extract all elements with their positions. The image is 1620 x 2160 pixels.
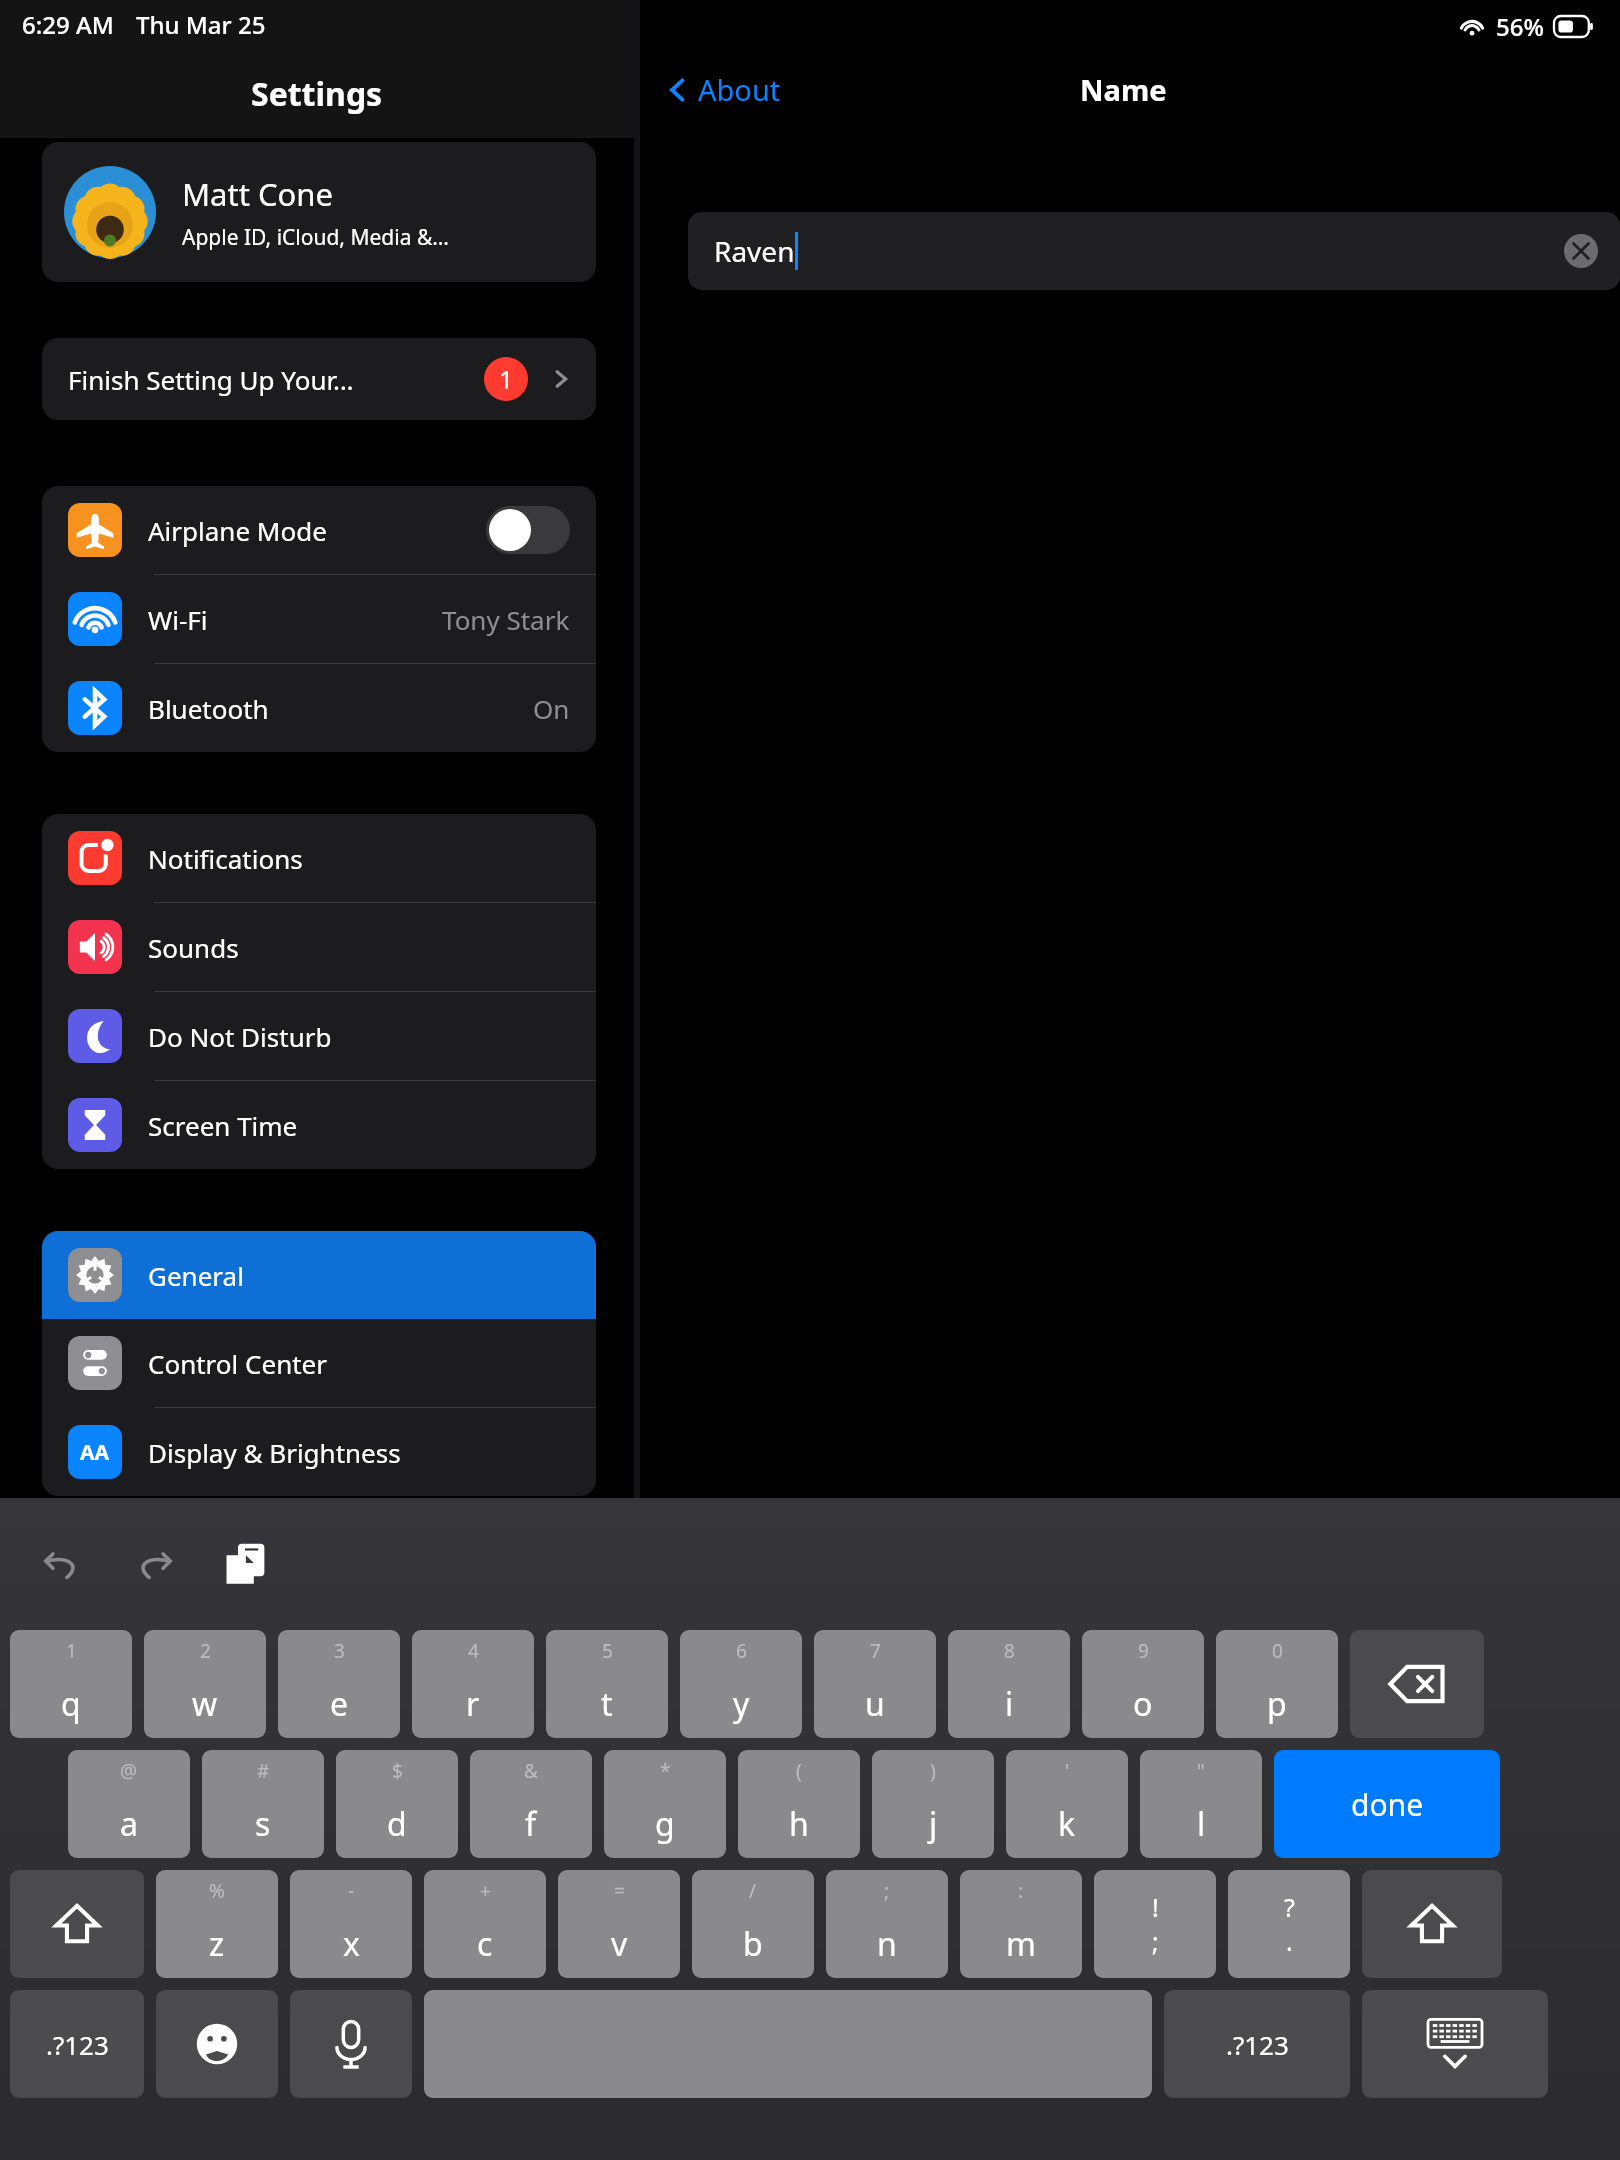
button[interactable]: Redo bbox=[124, 1535, 182, 1593]
staticText: % bbox=[209, 1878, 225, 1904]
button[interactable]: Bluetooth bbox=[42, 664, 596, 752]
staticText: : bbox=[1018, 1878, 1024, 1904]
button[interactable]: Undo bbox=[34, 1535, 92, 1593]
button[interactable]: Numbers and symbols bbox=[1164, 1990, 1350, 2098]
staticText: 6 bbox=[736, 1638, 747, 1664]
staticText: Raven bbox=[714, 232, 795, 270]
staticText: ; bbox=[884, 1878, 890, 1904]
button[interactable]: Control Center bbox=[42, 1319, 596, 1407]
button[interactable]: Shift bbox=[1362, 1870, 1502, 1978]
button[interactable]: done bbox=[1274, 1750, 1500, 1858]
staticText: b bbox=[743, 1922, 763, 1966]
staticText: y bbox=[733, 1682, 750, 1726]
staticText: @ bbox=[120, 1758, 138, 1784]
button[interactable]: Numbers and symbols bbox=[10, 1990, 144, 2098]
staticText: x bbox=[343, 1922, 360, 1966]
button[interactable]: + bbox=[424, 1870, 546, 1978]
button[interactable]: Screen Time bbox=[42, 1081, 596, 1169]
button[interactable]: 0 bbox=[1216, 1630, 1338, 1738]
button[interactable]: Raven bbox=[688, 212, 1620, 290]
button[interactable]: Paste bbox=[216, 1535, 274, 1593]
button[interactable]: Clear text bbox=[1564, 234, 1598, 268]
staticText: Tony Stark bbox=[442, 602, 570, 637]
button[interactable]: @ bbox=[68, 1750, 190, 1858]
staticText: .?123 bbox=[46, 2027, 109, 2062]
staticText: Matt Cone bbox=[182, 173, 333, 215]
staticText: w bbox=[192, 1682, 218, 1726]
staticText: a bbox=[120, 1802, 138, 1846]
button[interactable]: ' bbox=[1006, 1750, 1128, 1858]
button[interactable]: / bbox=[692, 1870, 814, 1978]
button[interactable]: 9 bbox=[1082, 1630, 1204, 1738]
button[interactable]: About bbox=[662, 70, 781, 109]
button[interactable]: 8 bbox=[948, 1630, 1070, 1738]
staticText: About bbox=[698, 70, 781, 109]
staticText: . bbox=[1286, 1924, 1293, 1958]
staticText: # bbox=[257, 1758, 270, 1784]
button[interactable]: $ bbox=[336, 1750, 458, 1858]
staticText: AA bbox=[80, 1438, 110, 1467]
staticText: 1 bbox=[66, 1638, 77, 1664]
staticText: r bbox=[466, 1682, 480, 1726]
button[interactable]: ? bbox=[1228, 1870, 1350, 1978]
button[interactable]: ) bbox=[872, 1750, 994, 1858]
button[interactable]: 6 bbox=[680, 1630, 802, 1738]
button[interactable]: Wi-Fi bbox=[42, 575, 596, 663]
button[interactable]: Matt Cone bbox=[42, 142, 596, 282]
button[interactable]: 5 bbox=[546, 1630, 668, 1738]
button[interactable]: 7 bbox=[814, 1630, 936, 1738]
button[interactable]: AA bbox=[42, 1408, 596, 1496]
staticText: 7 bbox=[870, 1638, 881, 1664]
button[interactable]: ; bbox=[826, 1870, 948, 1978]
staticText: 5 bbox=[602, 1638, 613, 1664]
button[interactable]: 2 bbox=[144, 1630, 266, 1738]
button[interactable]: ( bbox=[738, 1750, 860, 1858]
staticText: Screen Time bbox=[148, 1108, 298, 1143]
button[interactable]: 3 bbox=[278, 1630, 400, 1738]
button[interactable]: Airplane Mode bbox=[42, 486, 596, 574]
staticText: & bbox=[524, 1758, 538, 1784]
button[interactable]: Do Not Disturb bbox=[42, 992, 596, 1080]
staticText: Finish Setting Up Your… bbox=[68, 362, 354, 397]
button[interactable]: Backspace bbox=[1350, 1630, 1484, 1738]
staticText: ; bbox=[1152, 1924, 1159, 1958]
button[interactable]: : bbox=[960, 1870, 1082, 1978]
staticText: Display & Brightness bbox=[148, 1435, 401, 1470]
button[interactable]: - bbox=[290, 1870, 412, 1978]
button[interactable]: Shift bbox=[10, 1870, 144, 1978]
button[interactable]: & bbox=[470, 1750, 592, 1858]
button[interactable]: Finish Setting Up Your… bbox=[42, 338, 596, 420]
staticText: " bbox=[1197, 1758, 1205, 1784]
staticText: j bbox=[929, 1802, 938, 1846]
button[interactable]: Sounds bbox=[42, 903, 596, 991]
button[interactable]: ! bbox=[1094, 1870, 1216, 1978]
staticText: l bbox=[1197, 1802, 1206, 1846]
staticText: 9 bbox=[1138, 1638, 1149, 1664]
button[interactable]: 1 bbox=[10, 1630, 132, 1738]
staticText: On bbox=[533, 691, 570, 726]
button[interactable]: 4 bbox=[412, 1630, 534, 1738]
button[interactable]: Notifications bbox=[42, 814, 596, 902]
staticText: 4 bbox=[468, 1638, 479, 1664]
button[interactable]: % bbox=[156, 1870, 278, 1978]
button[interactable]: " bbox=[1140, 1750, 1262, 1858]
staticText: v bbox=[611, 1922, 628, 1966]
staticText: * bbox=[660, 1758, 671, 1784]
staticText: o bbox=[1133, 1682, 1153, 1726]
button[interactable]: General bbox=[42, 1231, 596, 1319]
staticText: Bluetooth bbox=[148, 691, 269, 726]
button[interactable]: * bbox=[604, 1750, 726, 1858]
button[interactable]: = bbox=[558, 1870, 680, 1978]
button[interactable]: Dictation bbox=[290, 1990, 412, 2098]
button[interactable]: Hide keyboard bbox=[1362, 1990, 1548, 2098]
staticText: m bbox=[1006, 1922, 1036, 1966]
button[interactable]: Emoji bbox=[156, 1990, 278, 2098]
staticText: p bbox=[1267, 1682, 1287, 1726]
staticText: ! bbox=[1152, 1890, 1159, 1924]
staticText: Settings bbox=[251, 72, 383, 116]
staticText: u bbox=[865, 1682, 885, 1726]
button[interactable]: # bbox=[202, 1750, 324, 1858]
staticText: t bbox=[601, 1682, 613, 1726]
staticText: e bbox=[330, 1682, 349, 1726]
